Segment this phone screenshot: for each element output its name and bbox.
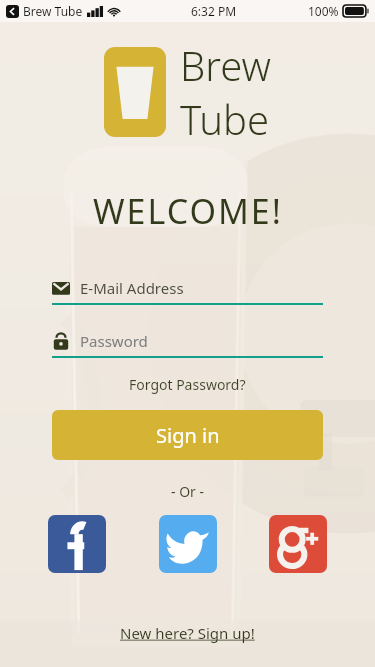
button[interactable]: Sign in with Facebook (48, 515, 106, 573)
staticText: New here? Sign up! (120, 623, 255, 643)
button[interactable]: Sign in (52, 410, 323, 460)
staticText: WELCOME! (93, 188, 283, 234)
staticText: Brew (180, 38, 271, 92)
staticText: 6:32 PM (191, 3, 237, 19)
staticText: Tube (180, 92, 270, 146)
staticText: Forgot Password? (129, 375, 246, 394)
staticText: - Or - (171, 482, 205, 501)
button[interactable]: Password (52, 331, 323, 358)
staticText: Sign in (156, 422, 220, 449)
button[interactable]: New here? Sign up! (112, 619, 263, 647)
button[interactable]: Sign in with Google Plus (269, 515, 327, 573)
staticText: E-Mail Address (80, 278, 184, 298)
button[interactable]: E-Mail Address (52, 278, 323, 305)
staticText: Brew Tube (23, 3, 83, 19)
button[interactable]: Forgot Password? (123, 372, 252, 397)
staticText: Password (80, 331, 148, 351)
staticText: 100% (308, 3, 339, 19)
button[interactable]: Sign in with Twitter (159, 515, 217, 573)
